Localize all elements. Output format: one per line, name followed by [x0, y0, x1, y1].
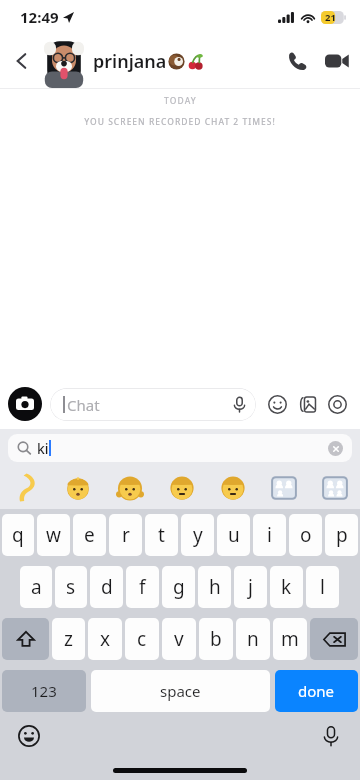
staticText: 12:49 — [20, 7, 59, 27]
button[interactable]: Camera — [8, 387, 42, 421]
staticText: 123 — [31, 681, 57, 701]
button[interactable]: u — [217, 514, 250, 556]
staticText: Chat — [67, 395, 100, 415]
button[interactable]: m — [273, 618, 307, 660]
button[interactable]: t — [145, 514, 178, 556]
staticText: y — [193, 522, 203, 548]
staticText: p — [336, 522, 348, 548]
button[interactable]: Shift — [2, 618, 49, 660]
button[interactable]: Back — [0, 39, 44, 83]
button[interactable]: Emoji suggestion — [258, 467, 309, 509]
staticText: u — [228, 522, 240, 548]
staticText: k — [281, 574, 292, 600]
button[interactable]: f — [126, 566, 159, 608]
button[interactable]: Emoji suggestion — [52, 467, 104, 509]
staticText: a — [31, 574, 42, 600]
button[interactable]: i — [253, 514, 286, 556]
button[interactable]: prinjana — [93, 49, 276, 74]
button[interactable]: Emoji suggestion — [207, 467, 258, 509]
staticText: space — [160, 681, 201, 701]
button[interactable]: ki — [8, 434, 352, 462]
button[interactable]: q — [2, 514, 34, 556]
button[interactable]: Emoji suggestion — [0, 467, 52, 509]
button[interactable]: o — [289, 514, 322, 556]
button[interactable]: Emoji suggestion — [156, 467, 207, 509]
staticText: h — [209, 574, 221, 600]
staticText: m — [281, 626, 299, 652]
button[interactable]: space — [91, 670, 270, 712]
button[interactable]: n — [236, 618, 270, 660]
button[interactable]: a — [20, 566, 52, 608]
button[interactable]: Stickers — [262, 389, 292, 419]
button[interactable]: Video call — [318, 40, 356, 82]
button[interactable]: Sticker pack — [292, 389, 322, 419]
staticText: TODAY — [164, 95, 197, 107]
button[interactable]: c — [125, 618, 159, 660]
button[interactable]: Emoji keyboard — [12, 719, 46, 753]
button[interactable]: x — [88, 618, 122, 660]
button[interactable]: d — [90, 566, 123, 608]
button[interactable]: y — [181, 514, 214, 556]
button[interactable]: z — [52, 618, 85, 660]
button[interactable]: p — [325, 514, 358, 556]
staticText: g — [173, 574, 185, 600]
staticText: o — [300, 522, 312, 548]
staticText: s — [66, 574, 76, 600]
staticText: r — [122, 522, 130, 548]
staticText: v — [174, 626, 184, 652]
button[interactable]: j — [234, 566, 267, 608]
button[interactable]: Voice call — [276, 40, 318, 82]
button[interactable]: done — [275, 670, 358, 712]
button[interactable]: Clear — [328, 441, 343, 456]
button[interactable]: w — [37, 514, 70, 556]
staticText: done — [298, 681, 335, 701]
staticText: prinjana — [93, 49, 167, 74]
staticText: c — [137, 626, 147, 652]
button[interactable]: Emoji suggestion — [104, 467, 156, 509]
staticText: q — [12, 522, 24, 548]
button[interactable]: Location — [322, 389, 352, 419]
button[interactable]: h — [198, 566, 231, 608]
staticText: l — [320, 574, 325, 600]
button[interactable]: s — [55, 566, 87, 608]
staticText: YOU SCREEN RECORDED CHAT 2 TIMES! — [84, 116, 276, 128]
button[interactable]: Emoji suggestion — [309, 467, 360, 509]
staticText: ki — [37, 439, 49, 458]
button[interactable]: g — [162, 566, 195, 608]
staticText: j — [248, 574, 253, 600]
staticText: i — [267, 522, 272, 548]
staticText: n — [247, 626, 259, 652]
staticText: x — [100, 626, 111, 652]
button[interactable]: Backspace — [310, 618, 358, 660]
staticText: w — [46, 522, 61, 548]
staticText: e — [84, 522, 95, 548]
button[interactable]: l — [306, 566, 339, 608]
staticText: z — [64, 626, 73, 652]
button[interactable]: k — [270, 566, 303, 608]
button[interactable]: v — [162, 618, 196, 660]
staticText: f — [139, 574, 146, 600]
staticText: d — [101, 574, 113, 600]
staticText: t — [158, 522, 165, 548]
button[interactable]: b — [199, 618, 233, 660]
button[interactable]: Chat — [50, 388, 256, 421]
button[interactable]: r — [109, 514, 142, 556]
button[interactable]: 123 — [2, 670, 86, 712]
staticText: 21 — [325, 11, 336, 24]
staticText: b — [210, 626, 222, 652]
button[interactable]: Dictation — [314, 719, 348, 753]
button[interactable]: e — [73, 514, 106, 556]
